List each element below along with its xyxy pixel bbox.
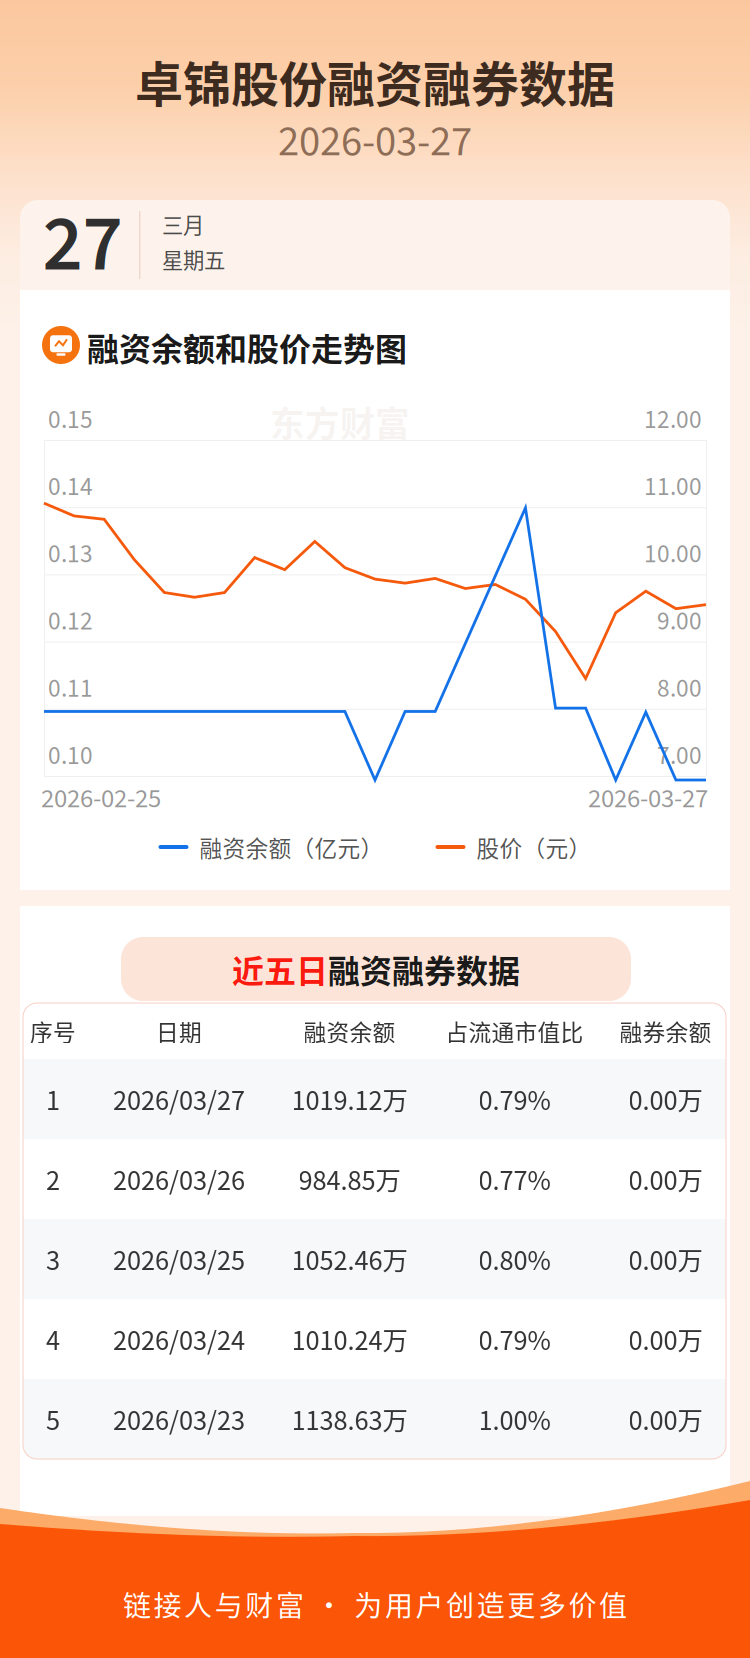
staticText: 0.10 [48, 738, 93, 774]
staticText: 0.00万 [628, 1401, 702, 1437]
staticText: 27 [42, 189, 122, 301]
staticText: 三月 [162, 209, 204, 239]
staticText: 2026/03/23 [113, 1401, 245, 1437]
staticText: 0.00万 [628, 1081, 702, 1117]
staticText: 融资余额和股价走势图 [87, 324, 407, 370]
staticText: 12.00 [644, 402, 702, 438]
staticText: 融资融券数据 [328, 946, 520, 992]
staticText: 1 [46, 1081, 60, 1117]
staticText: 1052.46万 [291, 1241, 407, 1277]
staticText: 0.00万 [628, 1241, 702, 1277]
staticText: 占流通市值比 [445, 1015, 583, 1047]
staticText: 0.14 [48, 469, 93, 505]
staticText: 0.15 [48, 402, 93, 438]
staticText: 东方财富 [250, 1223, 390, 1273]
staticText: 984.85万 [298, 1161, 400, 1197]
staticText: 5 [46, 1401, 60, 1437]
staticText: 星期五 [162, 244, 225, 274]
staticText: 日期 [156, 1015, 202, 1047]
staticText: 卓锦股份融资融券数据 [135, 46, 615, 116]
staticText: 0.79% [478, 1081, 550, 1117]
staticText: 链接人与财富 · 为用户创造更多价值 [123, 1584, 627, 1624]
staticText: 1.00% [478, 1401, 550, 1437]
staticText: 0.79% [478, 1321, 550, 1357]
staticText: 融券余额 [619, 1015, 711, 1047]
staticText: 融资余额 [303, 1015, 395, 1047]
staticText: 0.11 [48, 671, 93, 707]
staticText: 0.80% [478, 1241, 550, 1277]
staticText: 9.00 [657, 604, 702, 640]
staticText: 2026/03/26 [113, 1161, 245, 1197]
staticText: 0.12 [48, 604, 93, 640]
staticText: 东方财富 [270, 397, 410, 447]
staticText: 10.00 [644, 536, 702, 572]
staticText: 3 [46, 1241, 60, 1277]
staticText: 7.00 [657, 738, 702, 774]
staticText: 2026-02-25 [41, 780, 161, 818]
staticText: 近五日 [232, 946, 328, 992]
staticText: 2026/03/27 [113, 1081, 245, 1117]
staticText: 融资余额（亿元） [199, 831, 383, 863]
staticText: 1010.24万 [291, 1321, 407, 1357]
staticText: 0.00万 [628, 1321, 702, 1357]
staticText: 序号 [30, 1015, 76, 1047]
staticText: 11.00 [644, 469, 702, 505]
staticText: 股价（元） [476, 831, 591, 863]
staticText: 0.00万 [628, 1161, 702, 1197]
staticText: 1138.63万 [291, 1401, 407, 1437]
staticText: 4 [46, 1321, 60, 1357]
staticText: 0.77% [478, 1161, 550, 1197]
staticText: 2026-03-27 [278, 112, 472, 172]
staticText: 2026/03/24 [113, 1321, 245, 1357]
staticText: 8.00 [657, 671, 702, 707]
staticText: 2 [46, 1161, 60, 1197]
staticText: 2026/03/25 [113, 1241, 245, 1277]
staticText: 1019.12万 [291, 1081, 407, 1117]
staticText: 2026-03-27 [588, 780, 708, 818]
button[interactable]: 卓锦股份融资融券数据 [0, 48, 750, 114]
staticText: 0.13 [48, 536, 93, 572]
